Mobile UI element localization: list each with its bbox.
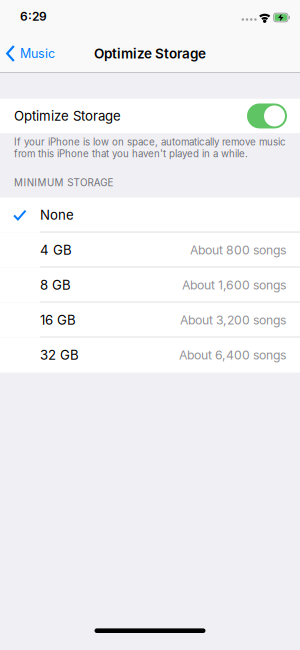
button[interactable]: 16 GB bbox=[0, 302, 300, 337]
staticText: 4 GB bbox=[40, 242, 72, 258]
staticText: If your iPhone is low on space, automati… bbox=[14, 136, 286, 148]
staticText: 8 GB bbox=[40, 277, 71, 293]
button[interactable]: Music bbox=[0, 45, 55, 62]
staticText: 32 GB bbox=[40, 347, 79, 363]
staticText: 16 GB bbox=[40, 312, 76, 328]
staticText: About 800 songs bbox=[190, 243, 286, 257]
button[interactable]: 32 GB bbox=[0, 337, 300, 372]
staticText: Music bbox=[20, 46, 55, 61]
button[interactable] bbox=[247, 103, 287, 128]
staticText: 6:29 bbox=[20, 9, 47, 24]
staticText: from this iPhone that you haven't played… bbox=[14, 148, 248, 160]
staticText: Optimize Storage bbox=[14, 108, 121, 124]
button[interactable]: 4 GB bbox=[0, 232, 300, 267]
staticText: About 6,400 songs bbox=[179, 348, 286, 362]
staticText: About 3,200 songs bbox=[180, 313, 286, 327]
button[interactable]: 8 GB bbox=[0, 267, 300, 302]
button[interactable]: None bbox=[0, 197, 300, 232]
staticText: MINIMUM STORAGE bbox=[14, 177, 114, 189]
staticText: About 1,600 songs bbox=[182, 278, 286, 292]
staticText: Optimize Storage bbox=[94, 45, 206, 62]
staticText: None bbox=[40, 207, 74, 223]
